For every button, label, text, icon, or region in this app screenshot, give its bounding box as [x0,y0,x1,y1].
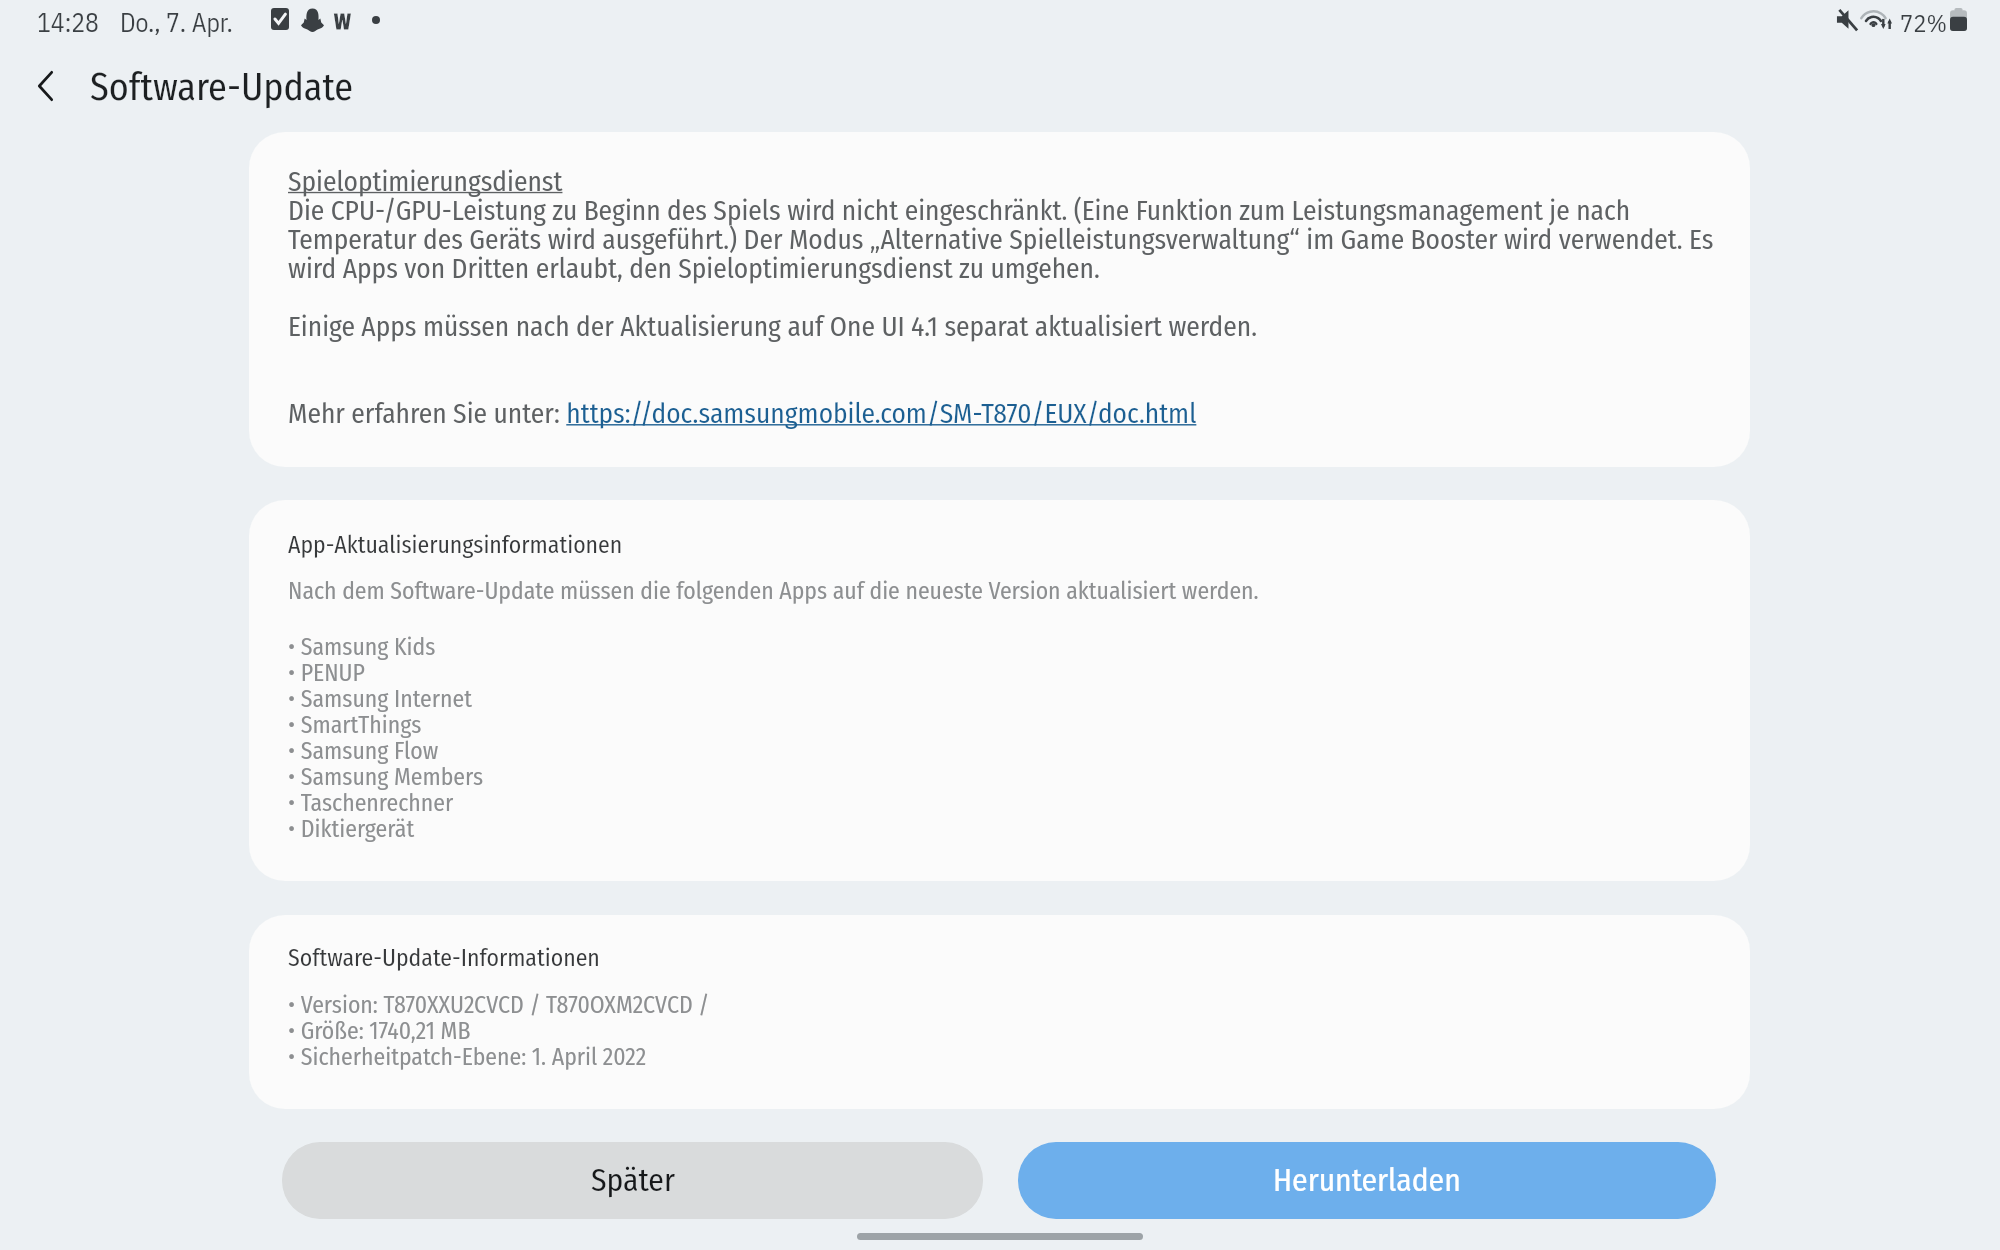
staticText: Do., 7. Apr. [120,6,233,39]
staticText: Nach dem Software-Update müssen die folg… [288,577,1728,605]
button[interactable]: Back [16,58,74,116]
staticText: W [334,8,351,34]
button[interactable]: Später [282,1142,983,1219]
staticText: Software-Update-Informationen [288,944,600,972]
staticText: App-Aktualisierungsinformationen [288,531,623,559]
staticText: Software-Update [90,64,354,110]
staticText: • Samsung Kids • PENUP • Samsung Interne… [288,633,484,843]
staticText: Herunterladen [1273,1162,1461,1200]
staticText: Spieloptimierungsdienst Die CPU-/GPU-Lei… [288,165,1728,430]
staticText: 14:28 [37,6,99,39]
staticText: 72% [1900,7,1947,39]
button[interactable]: Herunterladen [1018,1142,1716,1219]
staticText: • Version: T870XXU2CVCD / T870OXM2CVCD /… [288,991,710,1071]
staticText: Später [591,1162,675,1200]
